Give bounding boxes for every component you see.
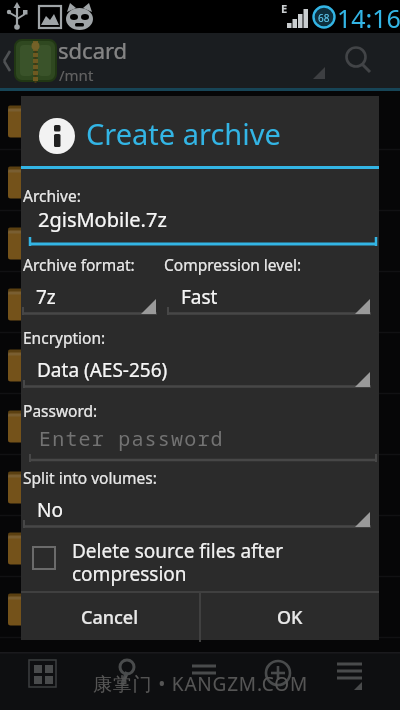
staticText: No bbox=[37, 497, 63, 523]
button[interactable]: Data (AES-256) bbox=[23, 350, 371, 388]
staticText: Delete source files after compression bbox=[72, 538, 284, 587]
staticText: OK bbox=[277, 605, 303, 630]
button[interactable]: Enter password bbox=[29, 419, 377, 462]
staticText: sdcard bbox=[58, 35, 128, 65]
button[interactable]: OK bbox=[201, 592, 379, 642]
staticText: /mnt bbox=[59, 65, 94, 85]
staticText: Archive format: bbox=[23, 254, 135, 275]
staticText: Fast bbox=[181, 284, 218, 310]
staticText: Data (AES-256) bbox=[37, 357, 168, 383]
button[interactable]: Fast bbox=[167, 277, 371, 315]
staticText: 68 bbox=[318, 11, 330, 25]
staticText: Create archive bbox=[86, 114, 281, 153]
staticText: Compression level: bbox=[164, 254, 302, 275]
staticText: Archive: bbox=[23, 185, 81, 206]
staticText: E bbox=[281, 1, 288, 16]
staticText: 康掌门 • KANGZM.COM bbox=[93, 671, 308, 697]
staticText: Enter password bbox=[39, 425, 224, 452]
button[interactable]: 2gisMobile.7z bbox=[29, 201, 377, 246]
button[interactable]: 7z bbox=[22, 277, 157, 315]
staticText: Encryption: bbox=[23, 327, 106, 348]
staticText: 14:16 bbox=[337, 1, 400, 34]
button[interactable]: No bbox=[23, 490, 371, 528]
staticText: 2gisMobile.7z bbox=[38, 206, 167, 233]
button[interactable]: Cancel bbox=[21, 592, 199, 642]
button[interactable]: sdcard bbox=[0, 33, 400, 88]
staticText: Password: bbox=[23, 400, 98, 421]
staticText: Cancel bbox=[81, 605, 139, 630]
staticText: Split into volumes: bbox=[23, 467, 157, 488]
button[interactable]: 康掌门 • KANGZM.COM bbox=[0, 652, 400, 710]
staticText: 7z bbox=[36, 284, 56, 310]
button[interactable]: Delete source files after compression bbox=[33, 538, 363, 587]
